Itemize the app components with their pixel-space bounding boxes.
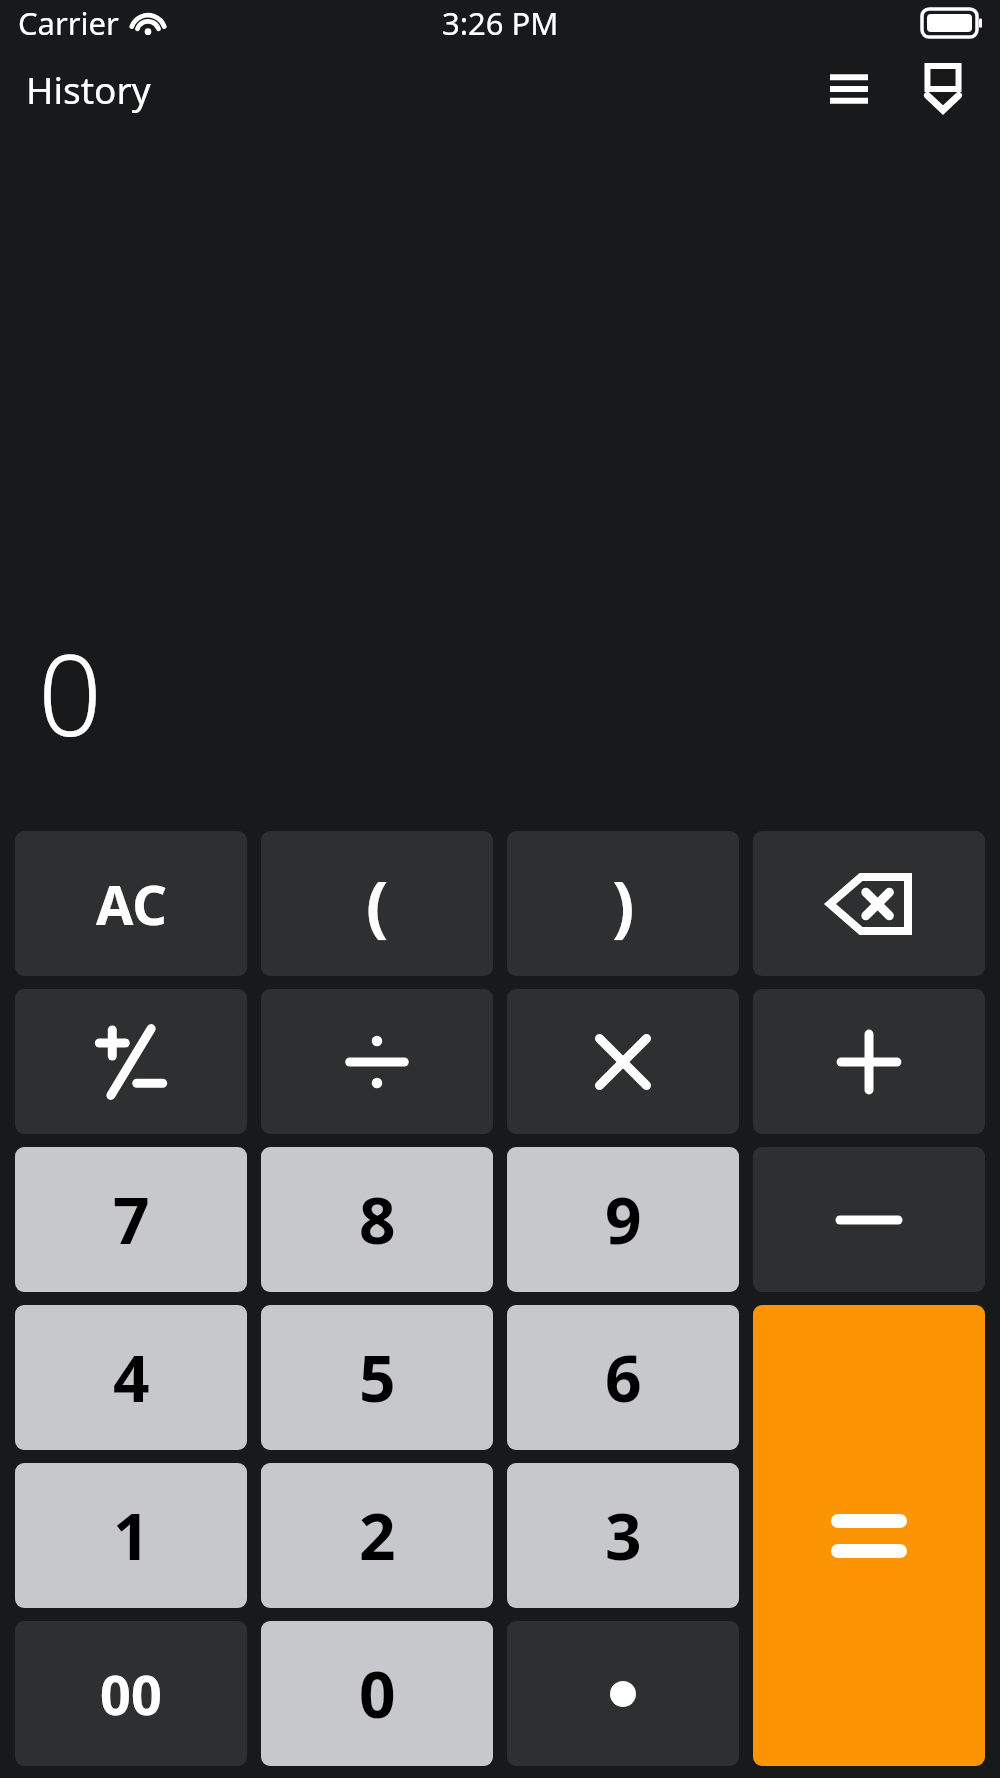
staticText: 1 (113, 1492, 150, 1579)
staticText: 0 (359, 1650, 396, 1737)
staticText: 6 (605, 1334, 642, 1421)
staticText: Carrier (18, 2, 119, 44)
staticText: ( (366, 859, 389, 949)
button[interactable]: ) (507, 831, 739, 976)
button[interactable]: 0 (261, 1621, 493, 1766)
staticText: 2 (359, 1492, 396, 1579)
button[interactable]: Minus (753, 1147, 985, 1292)
button[interactable]: Toggle sign (15, 989, 247, 1134)
button[interactable]: 7 (15, 1147, 247, 1292)
staticText: ) (612, 859, 635, 949)
button[interactable]: Plus (753, 989, 985, 1134)
staticText: 3 (605, 1492, 642, 1579)
staticText: 3:26 PM (442, 2, 559, 44)
staticText: 8 (359, 1176, 396, 1263)
button[interactable]: Multiply (507, 989, 739, 1134)
button[interactable]: History (10, 56, 167, 122)
button[interactable]: AC (15, 831, 247, 976)
button[interactable]: 1 (15, 1463, 247, 1608)
staticText: AC (96, 867, 167, 941)
button[interactable]: ( (261, 831, 493, 976)
staticText: History (26, 64, 151, 114)
button[interactable]: Menu (812, 52, 886, 126)
staticText: 00 (100, 1657, 162, 1731)
button[interactable]: 2 (261, 1463, 493, 1608)
button[interactable]: 3 (507, 1463, 739, 1608)
button[interactable]: 00 (15, 1621, 247, 1766)
staticText: 5 (359, 1334, 396, 1421)
staticText: 4 (113, 1334, 150, 1421)
button[interactable]: 8 (261, 1147, 493, 1292)
staticText: 7 (113, 1176, 150, 1263)
button[interactable]: Decimal point (507, 1621, 739, 1766)
button[interactable]: Backspace (753, 831, 985, 976)
button[interactable]: 6 (507, 1305, 739, 1450)
staticText: 9 (605, 1176, 642, 1263)
button[interactable]: Equals (753, 1305, 985, 1766)
button[interactable]: 4 (15, 1305, 247, 1450)
button[interactable]: 5 (261, 1305, 493, 1450)
staticText: 0 (38, 616, 102, 769)
button[interactable]: 9 (507, 1147, 739, 1292)
button[interactable]: Collapse history panel (906, 52, 980, 126)
button[interactable]: Divide (261, 989, 493, 1134)
